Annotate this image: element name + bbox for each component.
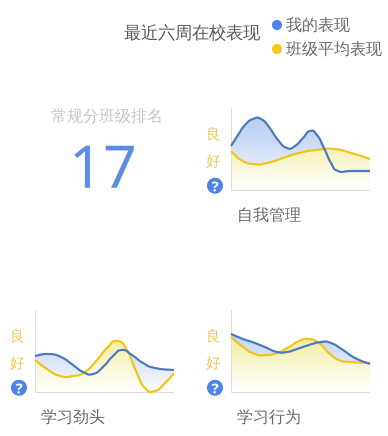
button[interactable]: 良 (35, 310, 204, 428)
staticText: 17 (69, 126, 137, 204)
staticText: 学习劲头 (41, 407, 105, 427)
button[interactable]: 良 (231, 310, 388, 428)
staticText: 良 (206, 327, 221, 345)
staticText: 最近六周在校表现 (124, 22, 260, 43)
staticText: 我的表现 (286, 15, 350, 35)
staticText: 学习行为 (237, 407, 301, 427)
staticText: ? (211, 378, 218, 397)
staticText: ? (211, 176, 218, 195)
staticText: 好 (206, 354, 221, 372)
staticText: 自我管理 (237, 205, 301, 225)
staticText: 常规分班级排名 (51, 106, 163, 126)
staticText: ? (15, 378, 22, 397)
staticText: 好 (10, 354, 25, 372)
staticText: 好 (206, 152, 221, 170)
staticText: 班级平均表现 (286, 39, 382, 59)
button[interactable]: 良 (231, 108, 388, 226)
staticText: 良 (10, 327, 25, 345)
staticText: 良 (206, 125, 221, 143)
